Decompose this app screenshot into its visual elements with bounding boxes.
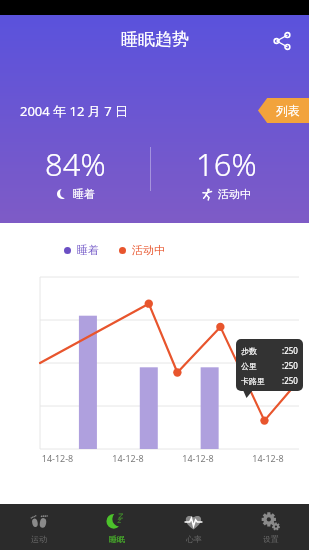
staticText: 16% — [196, 143, 257, 185]
button[interactable]: 睡眠 — [78, 504, 155, 550]
staticText: 84% — [45, 143, 106, 185]
staticText: 睡眠 — [109, 534, 125, 544]
staticText: :250 — [282, 360, 298, 371]
staticText: 公里 — [241, 361, 282, 371]
button[interactable]: 运动 — [0, 504, 78, 550]
staticText: 睡着 — [73, 187, 95, 201]
button[interactable]: 步数 — [236, 339, 303, 391]
button[interactable]: Share — [268, 27, 296, 55]
staticText: 14-12-8 — [163, 452, 233, 464]
staticText: :250 — [282, 345, 298, 356]
staticText: 14-12-8 — [22, 452, 93, 464]
button[interactable]: 设置 — [232, 504, 309, 550]
staticText: 14-12-8 — [93, 452, 163, 464]
staticText: 14-12-8 — [233, 452, 303, 464]
staticText: 设置 — [263, 534, 279, 544]
staticText: :250 — [282, 375, 298, 386]
staticText: 睡眠趋势 — [121, 29, 189, 50]
button[interactable]: 心率 — [155, 504, 232, 550]
staticText: 运动 — [31, 534, 47, 544]
staticText: 活动中 — [218, 187, 251, 201]
button[interactable]: 16% — [151, 143, 301, 201]
staticText: 步数 — [241, 346, 282, 356]
button[interactable]: 84% — [0, 143, 150, 201]
staticText: 卡路里 — [241, 376, 282, 386]
staticText: 心率 — [186, 534, 202, 544]
staticText: 列表 — [276, 103, 300, 118]
staticText: 2004 年 12 月 7 日 — [20, 102, 128, 120]
staticText: 睡着 — [77, 243, 99, 257]
button[interactable]: 列表 — [258, 98, 309, 123]
staticText: 活动中 — [132, 243, 165, 257]
